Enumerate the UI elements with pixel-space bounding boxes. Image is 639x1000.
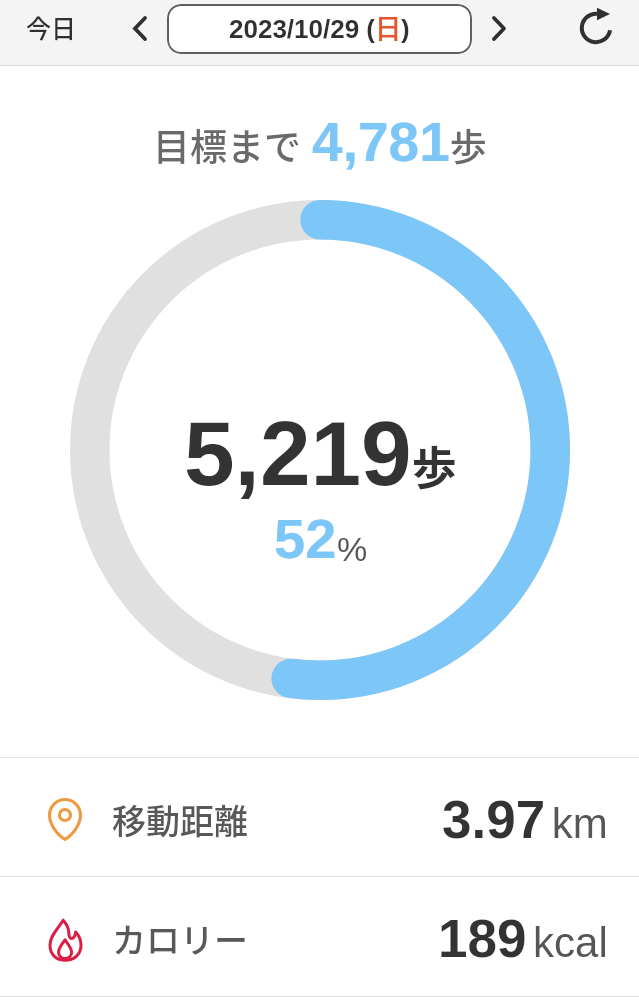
button[interactable]: 2023/10/29 (日) bbox=[167, 4, 472, 54]
button[interactable]: Previous day bbox=[118, 6, 162, 50]
staticText: 目標まで 4,781歩 bbox=[153, 111, 487, 172]
button[interactable]: 移動距離 bbox=[0, 760, 639, 878]
staticText: 189 kcal bbox=[438, 909, 608, 968]
staticText: 2023/10/29 (日) bbox=[229, 13, 410, 46]
button[interactable]: カロリー bbox=[0, 879, 639, 998]
button[interactable]: 今日 bbox=[14, 2, 88, 52]
staticText: 移動距離 bbox=[112, 795, 248, 844]
button[interactable]: Next day bbox=[477, 6, 521, 50]
staticText: 今日 bbox=[26, 9, 77, 45]
staticText: 3.97 km bbox=[442, 790, 608, 849]
staticText: 52 bbox=[274, 507, 337, 570]
staticText: % bbox=[337, 530, 368, 568]
staticText: 5,219歩 bbox=[184, 403, 457, 505]
button[interactable]: Refresh bbox=[570, 2, 622, 54]
staticText: カロリー bbox=[112, 914, 248, 963]
